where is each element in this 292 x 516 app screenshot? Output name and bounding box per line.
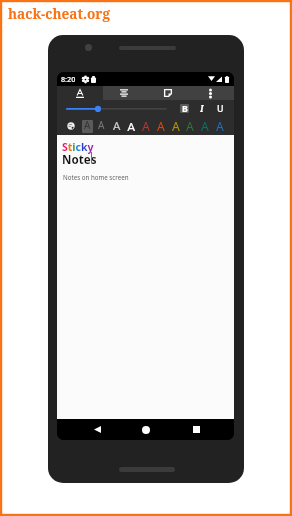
button[interactable]: Back [87, 419, 107, 440]
button[interactable]: B [180, 104, 189, 113]
button[interactable]: Recent apps [186, 419, 206, 440]
button[interactable]: A [82, 120, 93, 133]
button[interactable]: A [214, 120, 225, 133]
staticText: A [127, 118, 136, 131]
staticText: A [142, 118, 150, 131]
button[interactable]: Home [136, 419, 156, 440]
staticText: B [182, 104, 188, 112]
staticText: A [186, 118, 194, 131]
button[interactable]: A [111, 120, 122, 133]
button[interactable]: New note [159, 86, 177, 100]
button[interactable]: U [216, 104, 225, 113]
button[interactable]: A [184, 120, 195, 133]
button[interactable]: Align center [115, 86, 133, 100]
button[interactable]: A [96, 120, 107, 133]
staticText: A [201, 118, 209, 131]
staticText: A [98, 118, 105, 131]
staticText: Notes [62, 152, 97, 168]
button[interactable]: Colour palette [66, 121, 76, 131]
button[interactable]: Font size [63, 100, 171, 116]
staticText: 8:20 [61, 74, 76, 84]
staticText: A [216, 118, 224, 131]
button[interactable]: A [170, 120, 181, 133]
staticText: I [200, 103, 204, 112]
staticText: A [157, 118, 165, 131]
button[interactable]: A [199, 120, 210, 133]
staticText: A [172, 118, 180, 131]
button[interactable]: Text formatting [71, 86, 89, 100]
button[interactable]: A [140, 120, 151, 133]
staticText: A [113, 118, 121, 131]
staticText: U [217, 103, 224, 112]
staticText: Sticky [62, 140, 94, 154]
staticText: A [84, 120, 91, 131]
button[interactable]: I [197, 104, 206, 113]
button[interactable]: More options [203, 86, 217, 100]
button[interactable]: A [126, 120, 137, 133]
staticText: Notes on home screen [63, 173, 129, 181]
staticText: hack-cheat.org [8, 4, 110, 23]
button[interactable]: A [155, 120, 166, 133]
